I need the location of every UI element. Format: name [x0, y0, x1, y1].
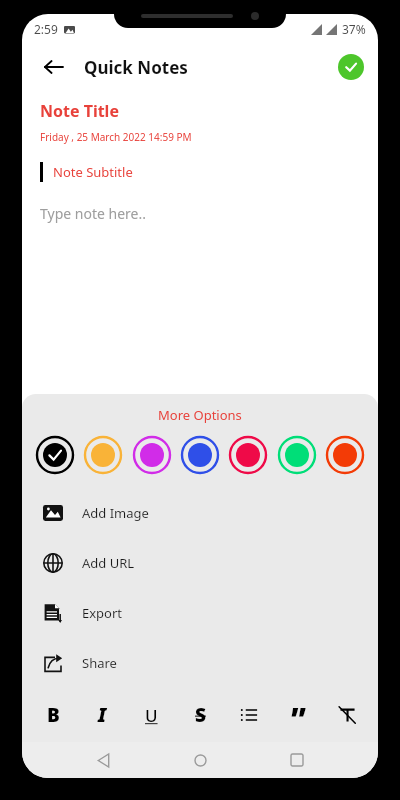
- button[interactable]: Colour option: [34, 434, 76, 476]
- staticText: 2:59: [34, 21, 58, 37]
- button[interactable]: Clear formatting: [330, 698, 364, 732]
- button[interactable]: Colour option: [82, 434, 124, 476]
- button[interactable]: Note Title: [40, 100, 119, 122]
- button[interactable]: Export: [22, 588, 378, 638]
- staticText: S: [195, 702, 206, 728]
- button[interactable]: Colour option: [227, 434, 269, 476]
- staticText: Quick Notes: [84, 56, 188, 79]
- button[interactable]: Strikethrough: [183, 698, 217, 732]
- button[interactable]: Add URL: [22, 538, 378, 588]
- button[interactable]: Save note: [338, 54, 364, 80]
- staticText: Export: [82, 604, 123, 622]
- button[interactable]: Home: [184, 744, 216, 776]
- button[interactable]: Back: [87, 744, 119, 776]
- button[interactable]: Type note here..: [40, 204, 146, 223]
- button[interactable]: Italic: [85, 698, 119, 732]
- button[interactable]: Bold: [36, 698, 70, 732]
- staticText: More Options: [158, 406, 242, 424]
- staticText: I: [98, 702, 107, 728]
- staticText: Add Image: [82, 504, 149, 522]
- staticText: Friday , 25 March 2022 14:59 PM: [40, 130, 192, 144]
- staticText: U: [145, 704, 158, 727]
- button[interactable]: Colour option: [131, 434, 173, 476]
- button[interactable]: Back: [36, 49, 72, 85]
- button[interactable]: Quote: [281, 698, 315, 732]
- staticText: Note Subtitle: [53, 163, 133, 181]
- button[interactable]: Colour option: [179, 434, 221, 476]
- button[interactable]: Add Image: [22, 488, 378, 538]
- staticText: Share: [82, 654, 117, 672]
- staticText: B: [47, 702, 60, 728]
- button[interactable]: Colour option: [276, 434, 318, 476]
- button[interactable]: Recent apps: [281, 744, 313, 776]
- button[interactable]: Bullet list: [232, 698, 266, 732]
- button[interactable]: Share: [22, 638, 378, 688]
- button[interactable]: Note Subtitle: [40, 162, 133, 182]
- button[interactable]: Underline: [134, 698, 168, 732]
- staticText: ”: [291, 698, 306, 732]
- button[interactable]: Colour option: [324, 434, 366, 476]
- staticText: Add URL: [82, 554, 135, 572]
- staticText: 37%: [342, 21, 366, 37]
